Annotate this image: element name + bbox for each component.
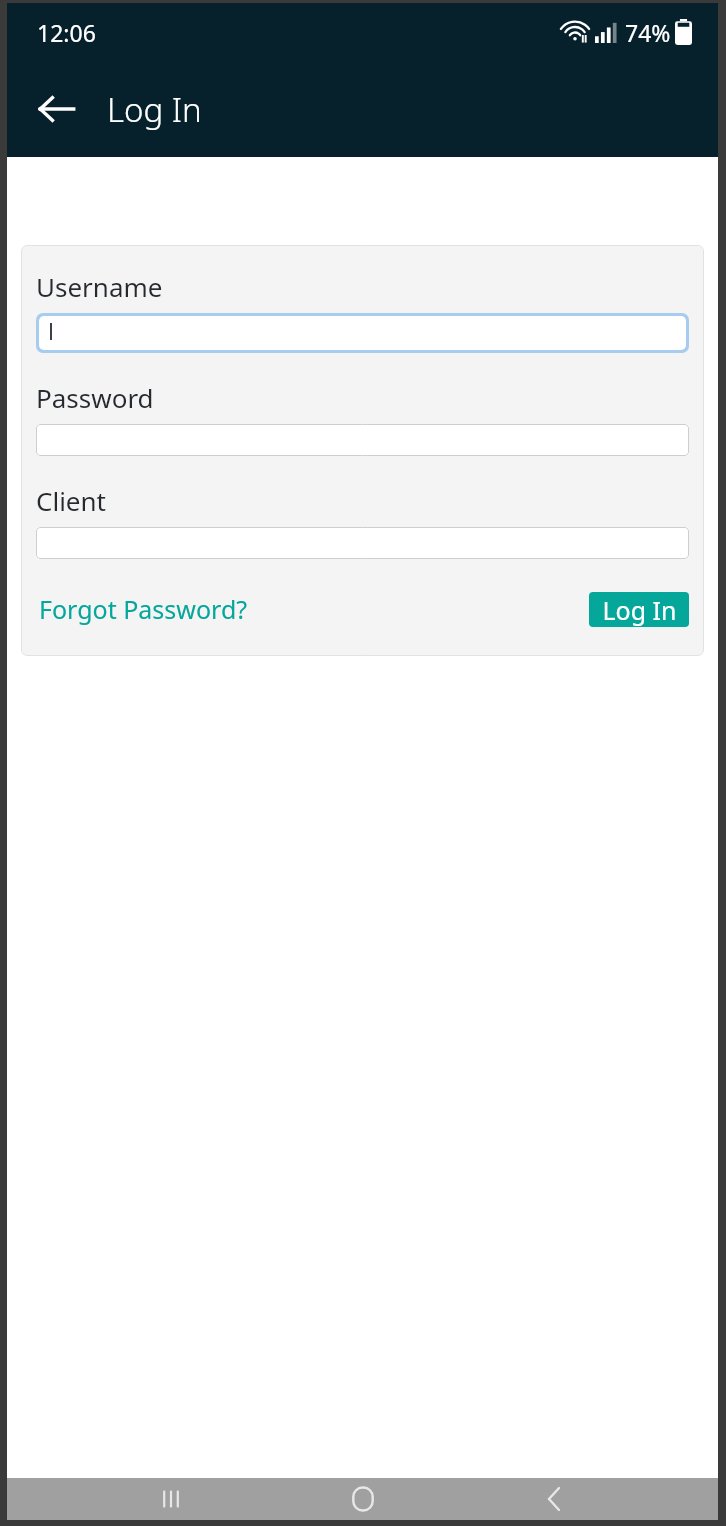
button[interactable]: Client field [36,527,689,559]
button[interactable]: Forgot Password? [36,584,251,634]
staticText: 74% [625,17,671,48]
staticText: Username [36,269,163,304]
button[interactable]: Log In [589,592,689,627]
staticText: Log In [107,87,202,132]
staticText: Password [36,380,154,415]
staticText: 12:06 [37,17,96,48]
staticText: Forgot Password? [39,592,248,626]
button[interactable]: Back [21,73,93,145]
staticText: Log In [602,593,677,627]
button[interactable] [36,313,689,353]
button[interactable]: Back [526,1478,582,1520]
button[interactable]: Recent apps [143,1478,199,1520]
button[interactable]: Password field [36,424,689,456]
button[interactable]: Home [335,1478,391,1520]
staticText: Client [36,483,106,518]
